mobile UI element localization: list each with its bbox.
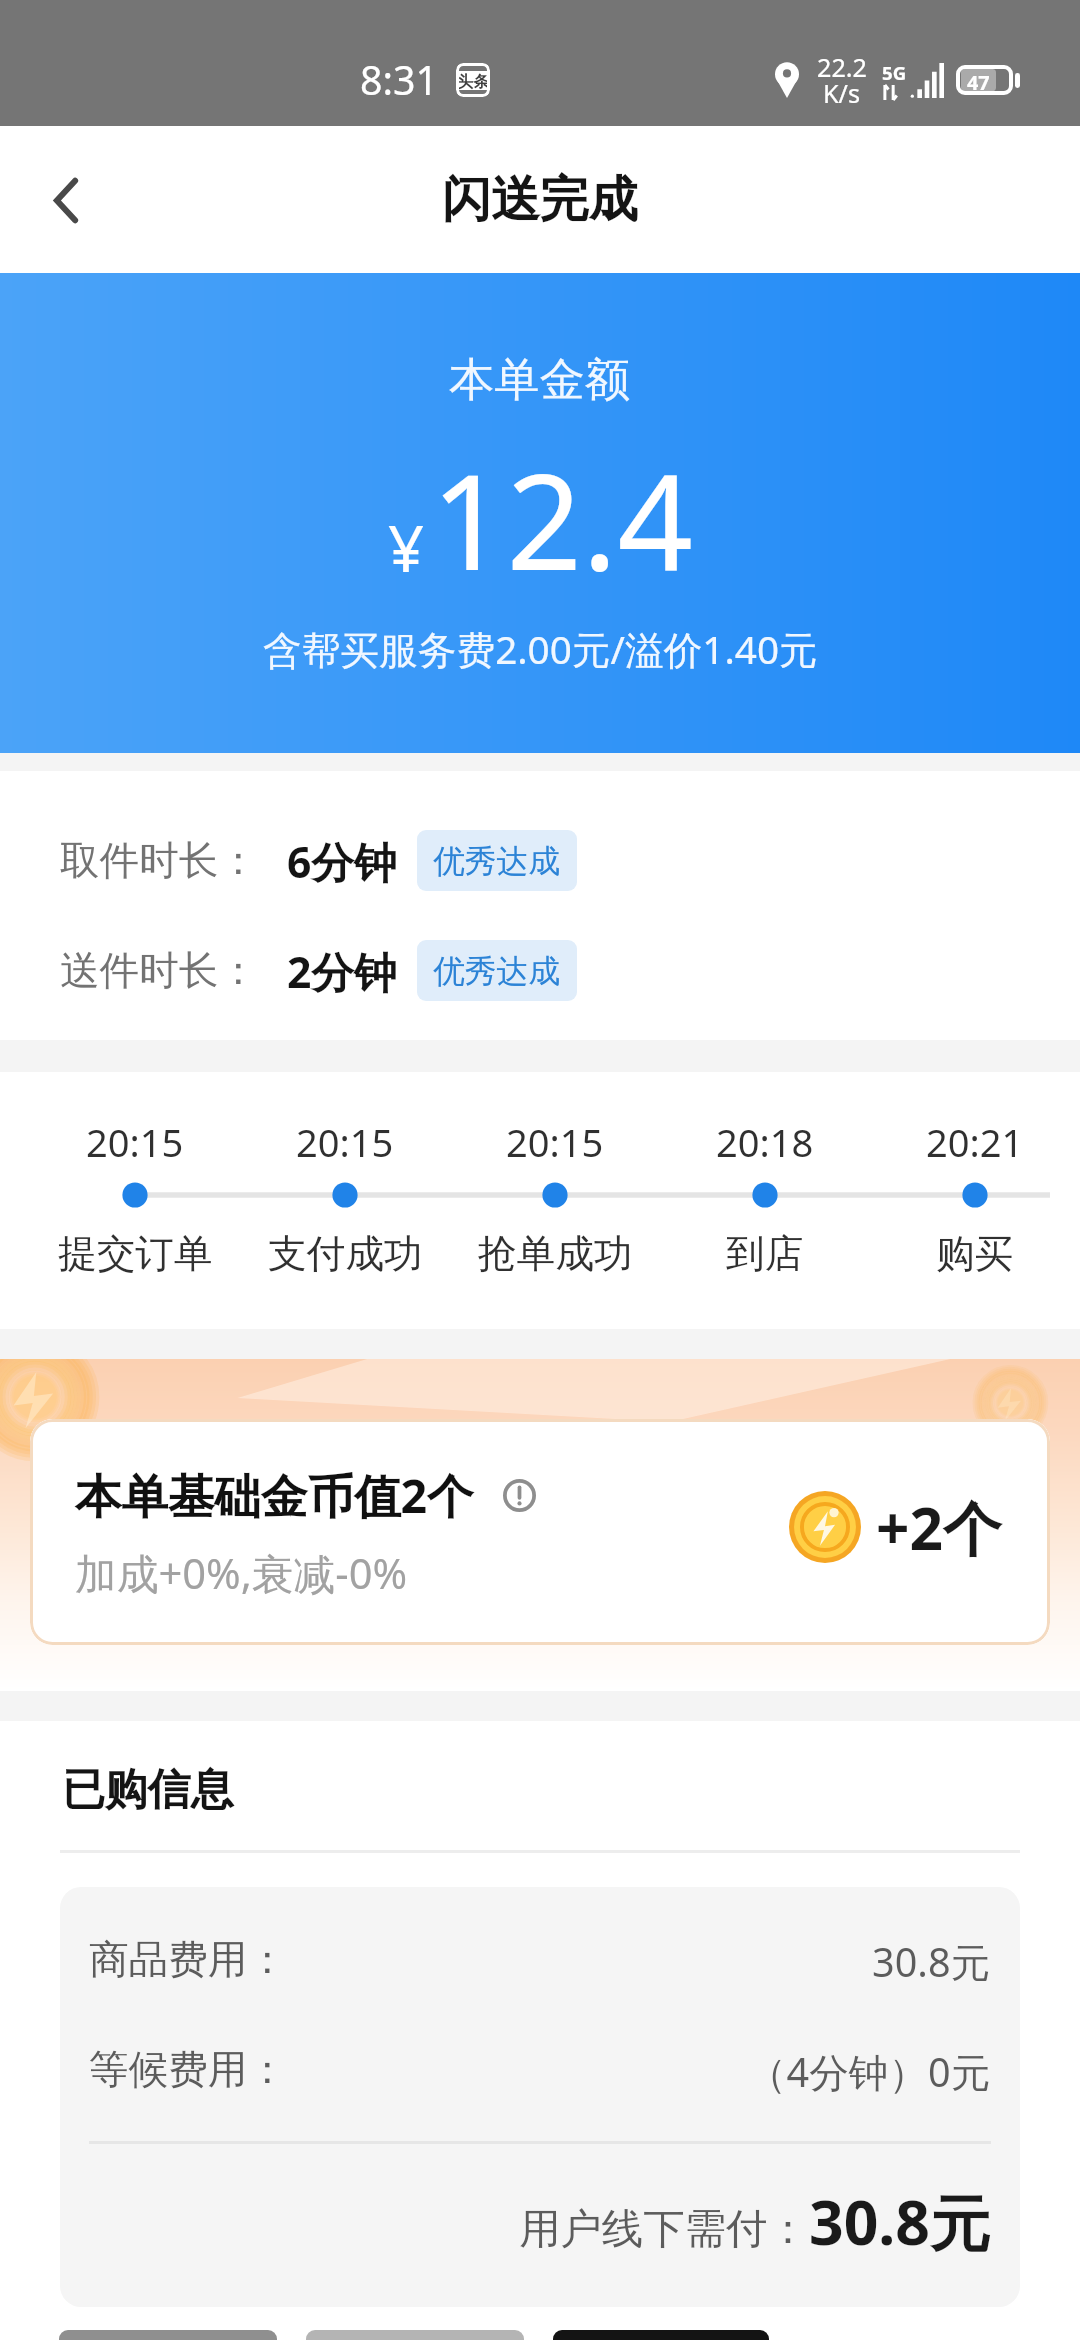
button[interactable]: Confirm [553, 2330, 769, 2340]
staticText: 22.2 [817, 50, 867, 84]
staticText: ¥ [388, 505, 425, 591]
staticText: 加成+0%,衰减-0% [75, 1544, 408, 1601]
staticText: 送件时长： [60, 946, 258, 996]
staticText: 20:21 [926, 1116, 1024, 1168]
staticText: 2分钟 [287, 942, 397, 1000]
staticText: +2个 [876, 1487, 1002, 1567]
staticText: 等候费用： [89, 2045, 287, 2095]
staticText: 购买 [936, 1230, 1014, 1279]
staticText: 20:18 [716, 1116, 814, 1168]
staticText: 20:15 [86, 1116, 184, 1168]
staticText: 含帮买服务费2.00元/溢价1.40元 [263, 623, 818, 676]
staticText: 本单基础金币值2个 [75, 1463, 474, 1527]
staticText: 30.8元 [872, 1935, 991, 1989]
staticText: 30.8元 [809, 2180, 991, 2263]
staticText: 本单金额 [449, 351, 631, 408]
staticText: 8:31 [360, 53, 438, 107]
staticText: 到店 [726, 1230, 804, 1279]
staticText: 20:15 [296, 1116, 394, 1168]
staticText: 商品费用： [89, 1935, 287, 1985]
staticText: 已购信息 [62, 1763, 234, 1817]
button[interactable]: 本单基础金币值2个 [30, 1419, 1050, 1645]
staticText: 抢单成功 [478, 1230, 633, 1279]
staticText: 提交订单 [58, 1230, 213, 1279]
staticText: K/s [823, 76, 861, 110]
button[interactable]: Order details [306, 2330, 524, 2340]
button[interactable]: Coin value info [503, 1479, 536, 1512]
staticText: 12.4 [431, 429, 693, 609]
staticText: （4分钟）0元 [747, 2045, 991, 2099]
staticText: 6分钟 [287, 832, 397, 890]
button[interactable]: Back [0, 134, 132, 266]
staticText: 5G [882, 60, 907, 85]
staticText: 优秀达成 [433, 841, 561, 881]
staticText: 支付成功 [268, 1230, 423, 1279]
staticText: 47 [967, 69, 990, 91]
staticText: 20:15 [506, 1116, 604, 1168]
staticText: 取件时长： [60, 836, 258, 886]
button[interactable]: Contact customer [59, 2330, 277, 2340]
staticText: 头条 [457, 71, 490, 90]
staticText: 闪送完成 [442, 169, 638, 231]
staticText: 优秀达成 [433, 951, 561, 991]
staticText: 用户线下需付： [519, 2203, 809, 2255]
